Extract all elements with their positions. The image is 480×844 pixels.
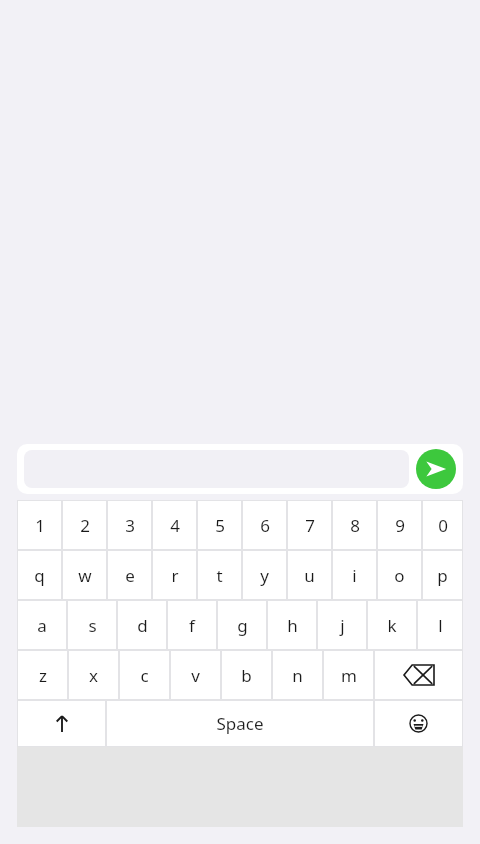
staticText: a <box>37 614 47 637</box>
button[interactable]: l <box>417 600 463 650</box>
staticText: j <box>340 614 345 637</box>
button[interactable]: o <box>377 550 422 600</box>
staticText: c <box>140 664 149 687</box>
staticText: 5 <box>215 514 225 537</box>
button[interactable]: 5 <box>197 500 242 550</box>
staticText: h <box>287 614 298 637</box>
staticText: n <box>292 664 303 687</box>
button[interactable]: j <box>317 600 367 650</box>
staticText: f <box>189 614 195 637</box>
button[interactable]: u <box>287 550 332 600</box>
staticText: r <box>171 564 179 587</box>
button[interactable]: f <box>167 600 217 650</box>
staticText: 4 <box>170 514 180 537</box>
staticText: e <box>125 564 135 587</box>
staticText: Space <box>216 712 264 735</box>
button[interactable]: t <box>197 550 242 600</box>
button[interactable]: 0 <box>422 500 463 550</box>
button[interactable]: z <box>17 650 68 700</box>
button[interactable]: h <box>267 600 317 650</box>
staticText: x <box>89 664 98 687</box>
staticText: q <box>34 564 45 587</box>
staticText: m <box>341 664 357 687</box>
button[interactable]: v <box>170 650 221 700</box>
button[interactable]: Send <box>416 449 456 489</box>
button[interactable]: 7 <box>287 500 332 550</box>
button[interactable]: 4 <box>152 500 197 550</box>
staticText: 0 <box>438 514 448 537</box>
button[interactable]: k <box>367 600 417 650</box>
button[interactable]: i <box>332 550 377 600</box>
staticText: o <box>394 564 405 587</box>
staticText: i <box>352 564 357 587</box>
staticText: s <box>88 614 97 637</box>
button[interactable]: q <box>17 550 62 600</box>
button[interactable]: Space <box>106 700 374 747</box>
staticText: 1 <box>35 514 45 537</box>
button[interactable]: Backspace <box>374 650 463 700</box>
button[interactable]: 3 <box>107 500 152 550</box>
button[interactable]: 9 <box>377 500 422 550</box>
button[interactable]: c <box>119 650 170 700</box>
button[interactable]: y <box>242 550 287 600</box>
staticText: 6 <box>260 514 270 537</box>
button[interactable]: 6 <box>242 500 287 550</box>
button[interactable]: Shift <box>17 700 106 747</box>
staticText: 2 <box>80 514 90 537</box>
staticText: 8 <box>350 514 360 537</box>
button[interactable]: s <box>67 600 117 650</box>
staticText: u <box>304 564 315 587</box>
button[interactable]: Emoji <box>374 700 463 747</box>
button[interactable]: 1 <box>17 500 62 550</box>
staticText: w <box>78 564 92 587</box>
button[interactable]: a <box>17 600 67 650</box>
staticText: 7 <box>305 514 315 537</box>
staticText: p <box>437 564 448 587</box>
button[interactable]: b <box>221 650 272 700</box>
staticText: 3 <box>125 514 135 537</box>
button[interactable]: x <box>68 650 119 700</box>
staticText: l <box>438 614 443 637</box>
staticText: d <box>137 614 148 637</box>
button[interactable]: r <box>152 550 197 600</box>
button[interactable]: 2 <box>62 500 107 550</box>
staticText: 9 <box>395 514 405 537</box>
button[interactable]: 8 <box>332 500 377 550</box>
button[interactable]: g <box>217 600 267 650</box>
staticText: k <box>387 614 397 637</box>
staticText: t <box>216 564 223 587</box>
staticText: g <box>237 614 248 637</box>
staticText: b <box>241 664 252 687</box>
button[interactable]: w <box>62 550 107 600</box>
button[interactable]: n <box>272 650 323 700</box>
button[interactable]: d <box>117 600 167 650</box>
staticText: v <box>191 664 200 687</box>
button[interactable]: e <box>107 550 152 600</box>
button[interactable]: m <box>323 650 374 700</box>
button[interactable]: p <box>422 550 463 600</box>
staticText: y <box>260 564 269 587</box>
staticText: z <box>39 664 47 687</box>
